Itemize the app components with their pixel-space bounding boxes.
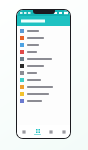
button[interactable] bbox=[17, 76, 70, 83]
button[interactable]: Home bbox=[17, 125, 31, 138]
button[interactable] bbox=[17, 16, 70, 26]
button[interactable]: Favorites bbox=[44, 125, 57, 138]
button[interactable] bbox=[17, 97, 70, 104]
button[interactable] bbox=[17, 27, 70, 34]
button[interactable] bbox=[17, 55, 70, 62]
button[interactable] bbox=[17, 83, 70, 90]
button[interactable] bbox=[17, 34, 70, 41]
button[interactable] bbox=[17, 69, 70, 76]
button[interactable] bbox=[17, 90, 70, 97]
button[interactable] bbox=[17, 41, 70, 48]
button[interactable]: Profile bbox=[57, 125, 70, 138]
button[interactable] bbox=[17, 62, 70, 69]
button[interactable]: Categories bbox=[31, 125, 44, 138]
button[interactable] bbox=[17, 48, 70, 55]
